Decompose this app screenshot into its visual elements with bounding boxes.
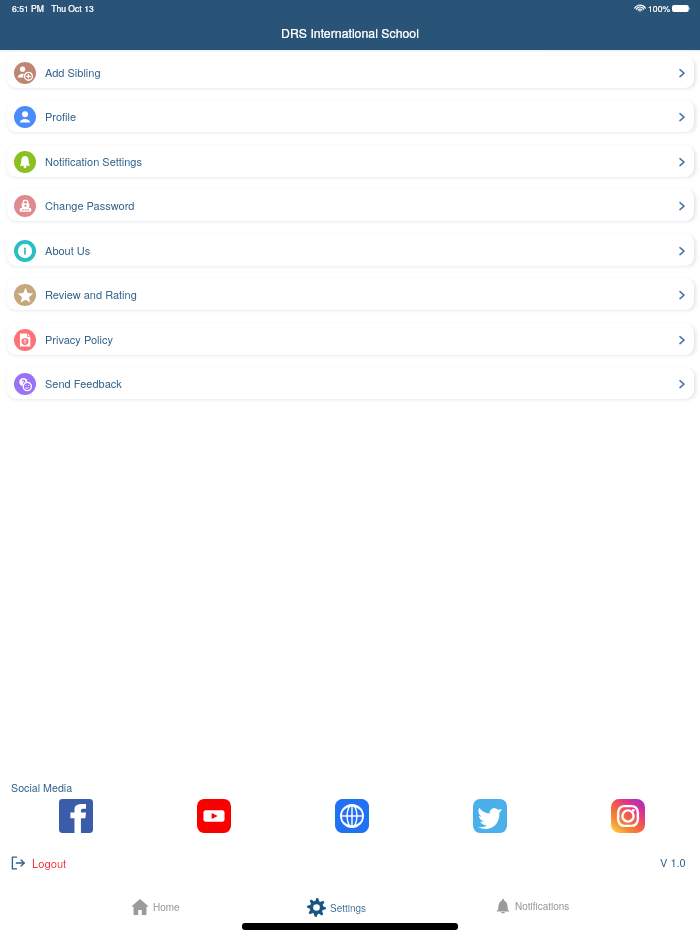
button[interactable]: Home: [131, 898, 180, 916]
staticText: 6:51 PM Thu Oct 13: [12, 2, 94, 14]
button[interactable]: Review and Rating: [7, 278, 694, 310]
staticText: About Us: [45, 242, 91, 258]
button[interactable]: Logout: [11, 855, 67, 871]
staticText: Home: [153, 900, 180, 914]
button[interactable]: About Us: [7, 234, 694, 266]
staticText: Notification Settings: [45, 153, 142, 169]
staticText: 100%: [648, 2, 671, 14]
staticText: Review and Rating: [45, 286, 137, 302]
button[interactable]: Instagram: [608, 796, 648, 836]
button[interactable]: Privacy Policy: [7, 323, 694, 355]
button[interactable]: Settings: [307, 898, 367, 917]
button[interactable]: Change Password: [7, 189, 694, 221]
staticText: Notifications: [515, 899, 570, 913]
staticText: Add Sibling: [45, 64, 101, 80]
button[interactable]: Notification Settings: [7, 145, 694, 177]
button[interactable]: Twitter: [470, 796, 510, 836]
staticText: V 1.0: [660, 854, 686, 870]
button[interactable]: Send Feedback: [7, 367, 694, 399]
button[interactable]: Facebook: [56, 796, 96, 836]
button[interactable]: YouTube: [194, 796, 234, 836]
staticText: Privacy Policy: [45, 331, 113, 347]
button[interactable]: Notifications: [495, 898, 570, 914]
staticText: Settings: [330, 901, 367, 915]
staticText: Change Password: [45, 197, 135, 213]
staticText: Social Media: [11, 780, 73, 795]
button[interactable]: Website: [332, 796, 372, 836]
button[interactable]: Profile: [7, 100, 694, 132]
staticText: Logout: [32, 855, 67, 871]
button[interactable]: Add Sibling: [7, 56, 694, 88]
staticText: Send Feedback: [45, 375, 122, 391]
staticText: DRS International School: [281, 24, 419, 42]
staticText: Profile: [45, 108, 77, 124]
